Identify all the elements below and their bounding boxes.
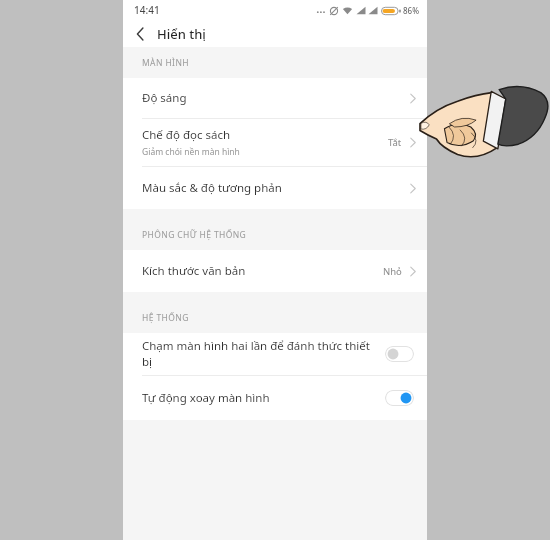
button[interactable]: Tự động xoay màn hình [123,376,427,420]
button[interactable]: Off [385,346,414,362]
staticText: Độ sáng [142,90,187,106]
staticText: PHÔNG CHỮ HỆ THỐNG [142,229,247,241]
staticText: MÀN HÌNH [142,57,189,69]
button[interactable]: Độ sáng [123,78,427,118]
staticText: Tắt [388,136,402,149]
staticText: Kích thước văn bản [142,263,246,279]
button[interactable]: Back [123,20,157,47]
staticText: Màu sắc & độ tương phản [142,180,282,196]
staticText: Chế độ đọc sách [142,127,231,143]
staticText: Hiển thị [157,25,206,43]
staticText: Tự động xoay màn hình [142,390,379,406]
button[interactable]: On [385,390,414,406]
button[interactable]: Màu sắc & độ tương phản [123,167,427,209]
staticText: 14:41 [134,3,160,17]
staticText: 86% [403,5,419,16]
button[interactable]: Chạm màn hình hai lần để đánh thức thiết… [123,333,427,375]
staticText: Chạm màn hình hai lần để đánh thức thiết… [142,338,379,370]
staticText: HỆ THỐNG [142,312,189,324]
button[interactable]: Kích thước văn bản [123,250,427,292]
staticText: Nhỏ [383,265,402,278]
button[interactable]: Chế độ đọc sách [123,119,427,166]
staticText: Giảm chói nền màn hình [142,146,240,158]
